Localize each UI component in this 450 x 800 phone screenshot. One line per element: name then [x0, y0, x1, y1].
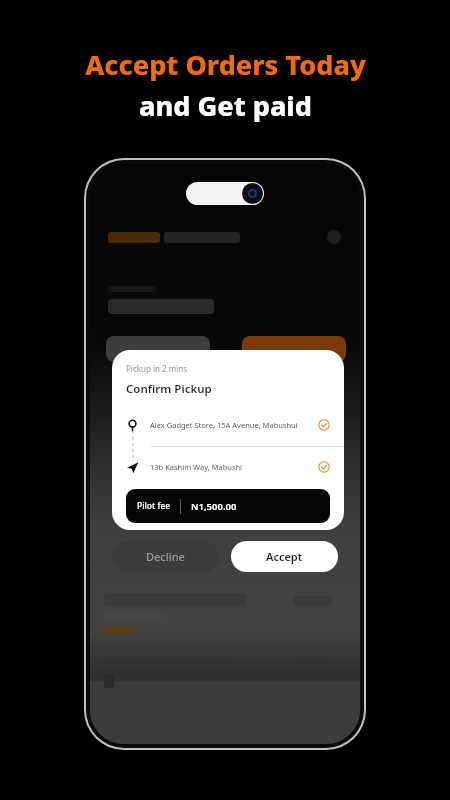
staticText: and Get paid [139, 87, 312, 124]
button[interactable]: Accept [231, 541, 338, 572]
staticText: 13b Kashim Way, Mabushi [150, 462, 318, 472]
button[interactable]: Pilot fee [126, 489, 330, 523]
staticText: Alex Gadget Store, 15A Avenue, Mabushui [150, 420, 318, 430]
staticText: Decline [146, 549, 185, 564]
other: Drop-off location [126, 461, 139, 474]
button[interactable]: Pickup location [126, 415, 330, 435]
button[interactable]: Decline [112, 541, 219, 572]
staticText: N1,500.00 [191, 500, 237, 513]
staticText: Confirm Pickup [126, 381, 212, 397]
staticText: Pickup in 2 mins [126, 363, 188, 374]
staticText: Accept [266, 549, 303, 564]
staticText: Pilot fee [137, 500, 171, 512]
staticText: Accept Orders Today [85, 46, 366, 83]
button[interactable]: Drop-off location [126, 457, 330, 477]
other: Pickup location [126, 419, 139, 432]
